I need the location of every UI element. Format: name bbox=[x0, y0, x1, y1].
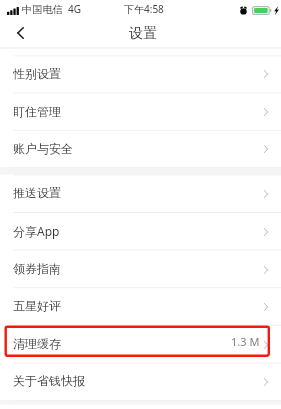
staticText: 账户与安全 bbox=[13, 141, 73, 156]
button[interactable]: 关于省钱快报 bbox=[0, 363, 281, 400]
staticText: 1.3 M bbox=[231, 334, 260, 349]
button[interactable]: 领券指南 bbox=[0, 251, 281, 288]
staticText: 设置 bbox=[129, 24, 158, 42]
button[interactable]: 性别设置 bbox=[0, 56, 281, 92]
staticText: 推送设置 bbox=[13, 185, 61, 200]
staticText: 领券指南 bbox=[13, 261, 61, 276]
button[interactable]: 盯住管理 bbox=[0, 94, 281, 130]
button[interactable]: 推送设置 bbox=[0, 175, 281, 212]
staticText: 下午4:58 bbox=[124, 2, 164, 16]
staticText: 性别设置 bbox=[13, 66, 61, 81]
button[interactable]: 五星好评 bbox=[0, 288, 281, 325]
button[interactable]: 清理缓存 bbox=[0, 326, 281, 363]
staticText: 五星好评 bbox=[13, 298, 61, 313]
staticText: 分享App bbox=[13, 223, 60, 239]
button[interactable]: 账户与安全 bbox=[0, 131, 281, 167]
button[interactable]: Back bbox=[0, 20, 41, 48]
staticText: 中国电信 bbox=[22, 3, 63, 16]
staticText: 盯住管理 bbox=[13, 104, 61, 119]
staticText: 清理缓存 bbox=[13, 336, 61, 351]
staticText: 关于省钱快报 bbox=[13, 373, 85, 388]
staticText: 4G bbox=[68, 2, 81, 16]
button[interactable]: 分享App bbox=[0, 213, 281, 250]
